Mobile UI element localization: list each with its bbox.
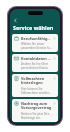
staticText: Ändern Sie hier Ihre persönlichen Daten. [21, 62, 52, 70]
button[interactable]: Kontaktdaten ändern [12, 54, 58, 72]
button[interactable]: Back [13, 18, 18, 23]
button[interactable]: Nachtrag zum Vorsorgevertrag [12, 99, 58, 122]
staticText: Vollmachten hinterlegen [21, 76, 52, 86]
button[interactable]: Vollmachten hinterlegen [12, 74, 58, 97]
button[interactable]: Berufsunfähigkeit [12, 34, 58, 52]
staticText: Kontaktdaten ändern [21, 56, 52, 61]
staticText: Service wählen [13, 24, 54, 31]
staticText: Hier können Sie Vollmachten erteilen ode… [21, 87, 52, 95]
staticText: Wählen Sie einen passenden Service hier … [21, 42, 52, 50]
staticText: Berufsunfähigkeit [21, 36, 52, 41]
staticText: Nachtrag zum Vorsorgevertrag [21, 101, 52, 111]
staticText: Reichen Sie jetzt Ihre Nachträge ein. [21, 112, 52, 120]
